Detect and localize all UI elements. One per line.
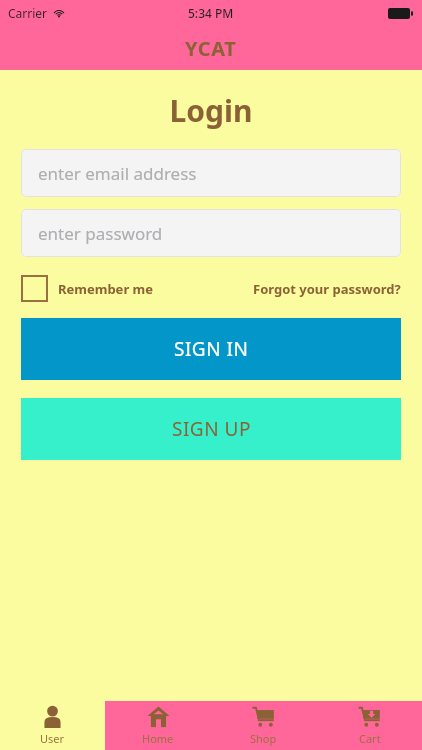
- staticText: 5:34 PM: [188, 5, 234, 21]
- staticText: Forgot your password?: [253, 280, 401, 298]
- button[interactable]: SIGN IN: [21, 318, 401, 380]
- staticText: Remember me: [58, 280, 154, 298]
- button[interactable]: Shop: [210, 701, 316, 750]
- other: Cart: [358, 705, 381, 728]
- other: User: [41, 705, 64, 728]
- button[interactable]: Home: [105, 701, 210, 750]
- button[interactable]: enter email address: [21, 149, 401, 197]
- staticText: Shop: [250, 731, 277, 746]
- button[interactable]: SIGN UP: [21, 398, 401, 460]
- staticText: Login: [0, 90, 422, 131]
- button[interactable]: Remember me: [21, 275, 154, 302]
- staticText: enter email address: [38, 162, 197, 185]
- staticText: SIGN IN: [174, 336, 249, 362]
- staticText: Cart: [359, 731, 381, 746]
- other: Home: [147, 705, 170, 728]
- staticText: SIGN UP: [172, 416, 251, 442]
- staticText: Carrier: [8, 5, 48, 21]
- other: Shop: [252, 705, 275, 728]
- staticText: enter password: [38, 222, 163, 245]
- button[interactable]: User: [0, 701, 105, 750]
- staticText: User: [40, 731, 65, 746]
- button[interactable]: enter password: [21, 209, 401, 257]
- button[interactable]: Forgot your password?: [253, 280, 401, 298]
- staticText: Home: [142, 731, 174, 746]
- button[interactable]: Cart: [316, 701, 422, 750]
- staticText: YCAT: [185, 35, 237, 62]
